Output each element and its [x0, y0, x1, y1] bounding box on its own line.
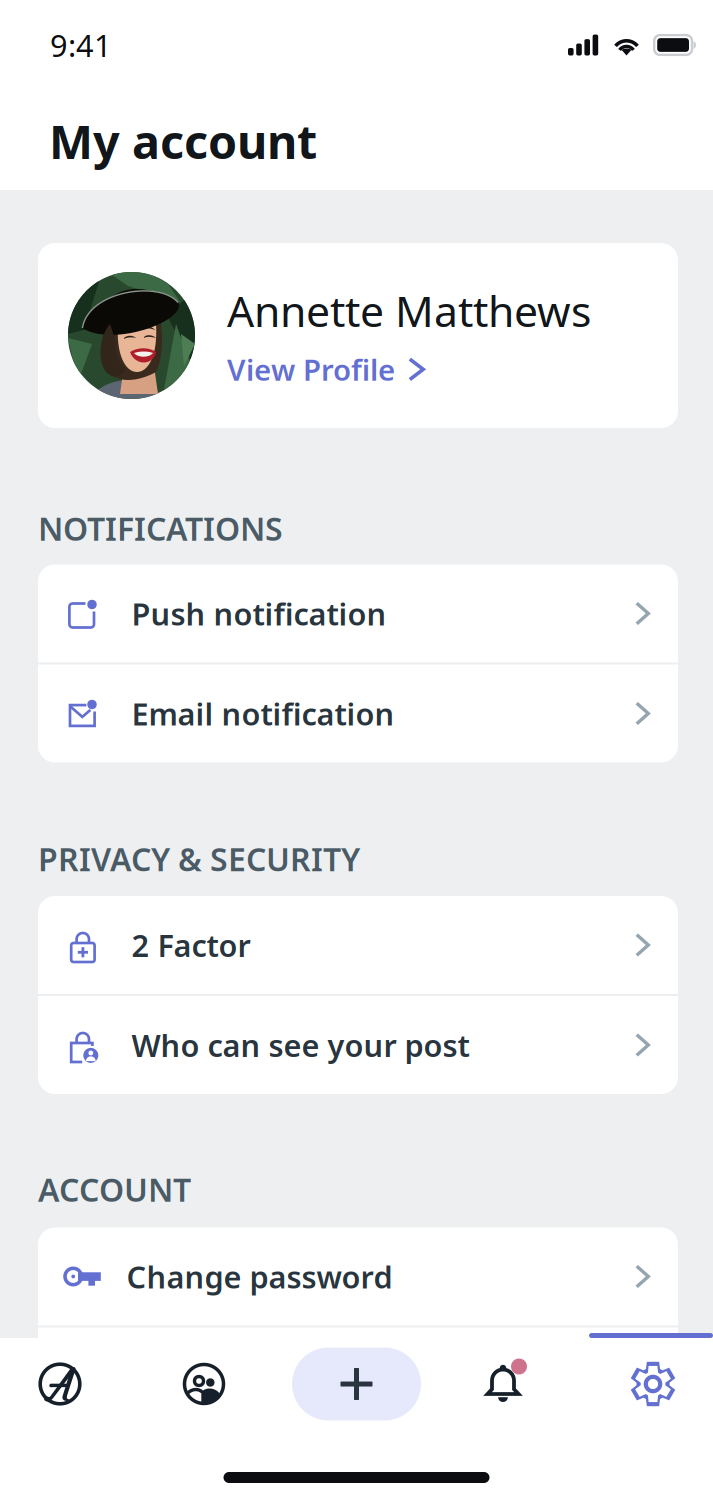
staticText: Who can see your post	[131, 1025, 469, 1065]
staticText: NOTIFICATIONS	[38, 507, 283, 549]
button[interactable]: Annette Matthews	[38, 243, 678, 428]
staticText: 2 Factor	[131, 925, 250, 965]
staticText: My account	[49, 110, 317, 172]
staticText: PRIVACY & SECURITY	[38, 837, 360, 880]
button[interactable]: Email notification	[38, 664, 678, 762]
button[interactable]: Notifications	[453, 1344, 565, 1424]
button[interactable]: Community	[148, 1344, 260, 1424]
staticText: View Profile	[227, 350, 395, 389]
staticText: Delete account	[126, 1356, 350, 1397]
button[interactable]: 2 Factor	[38, 896, 678, 994]
button[interactable]: Delete account	[38, 1327, 678, 1425]
button[interactable]: Who can see your post	[38, 996, 678, 1094]
button[interactable]: Create	[292, 1347, 421, 1420]
button[interactable]: Home	[4, 1344, 116, 1424]
staticText: Push notification	[131, 593, 386, 634]
staticText: Change password	[126, 1256, 392, 1297]
button[interactable]: Settings	[597, 1344, 709, 1424]
staticText: 9:41	[50, 25, 112, 65]
staticText: Email notification	[131, 693, 394, 734]
staticText: ACCOUNT	[38, 1168, 191, 1210]
staticText: Annette Matthews	[227, 282, 591, 339]
button[interactable]: Push notification	[38, 564, 678, 662]
button[interactable]: Change password	[38, 1227, 678, 1325]
